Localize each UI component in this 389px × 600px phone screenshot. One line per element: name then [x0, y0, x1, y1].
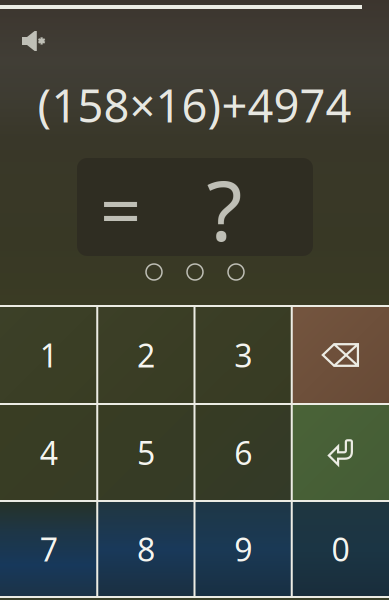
- button[interactable]: 0: [292, 501, 389, 597]
- button[interactable]: 2: [97, 306, 194, 404]
- button[interactable]: Enter: [292, 404, 389, 501]
- button[interactable]: 7: [0, 501, 97, 597]
- staticText: 2: [137, 334, 155, 376]
- button[interactable]: Mute sound: [10, 21, 58, 61]
- staticText: 6: [234, 431, 252, 474]
- staticText: 8: [137, 528, 155, 570]
- staticText: 4: [40, 431, 58, 474]
- button[interactable]: Delete: [292, 306, 389, 404]
- staticText: 5: [137, 431, 155, 474]
- button[interactable]: 4: [0, 404, 97, 501]
- button[interactable]: 8: [97, 501, 194, 597]
- staticText: ?: [206, 154, 242, 264]
- staticText: 3: [234, 334, 252, 376]
- staticText: =: [100, 161, 141, 257]
- button[interactable]: 3: [194, 306, 292, 404]
- staticText: 9: [234, 528, 252, 570]
- staticText: (158×16)+4974: [37, 75, 351, 135]
- button[interactable]: 9: [194, 501, 292, 597]
- staticText: 0: [331, 528, 349, 570]
- staticText: 1: [40, 334, 58, 376]
- button[interactable]: 5: [97, 404, 194, 501]
- button[interactable]: 1: [0, 306, 97, 404]
- staticText: 7: [40, 528, 58, 570]
- button[interactable]: 6: [194, 404, 292, 501]
